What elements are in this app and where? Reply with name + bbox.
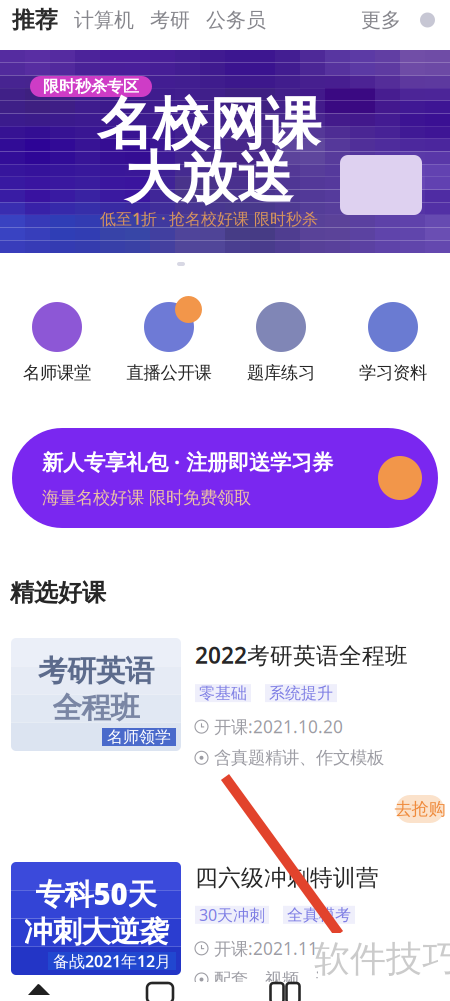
staticText: 公务员 [206, 8, 266, 32]
staticText: 开课:2021.10.20 [214, 715, 343, 738]
button[interactable]: 计算机 [66, 0, 142, 40]
staticText: 计算机 [74, 8, 134, 32]
staticText: 去抢购 [394, 798, 445, 820]
staticText: 全程班 [52, 690, 139, 726]
button[interactable]: 去抢购 [396, 795, 444, 823]
button[interactable]: 首页 [0, 982, 78, 1001]
staticText: 备战2021年12月 [53, 950, 171, 972]
button[interactable]: 考研 [142, 0, 198, 40]
staticText: 全真模考 [287, 905, 351, 925]
button[interactable]: 直播公开课 [113, 296, 225, 388]
staticText: 名校网课 [97, 90, 321, 158]
staticText: 限时秒杀专区 [43, 77, 139, 96]
staticText: 考研 [150, 8, 190, 32]
staticText: 专科50天 [35, 874, 156, 913]
button[interactable]: 新人专享礼包 · 注册即送学习券 [12, 428, 438, 528]
staticText: 直播公开课 [126, 362, 211, 383]
staticText: 开课:2021.11.08 [214, 937, 343, 960]
staticText: 2022考研英语全程班 [195, 640, 408, 670]
staticText: 四六级冲刺特训营 [195, 864, 379, 892]
staticText: 新人专享礼包 · 注册即送学习券 [42, 448, 333, 476]
button[interactable]: 公务员 [198, 0, 274, 40]
staticText: 含真题精讲、作文模板 [214, 747, 384, 768]
button[interactable]: 课程 [121, 982, 199, 1001]
button[interactable]: 学习资料 [337, 296, 449, 388]
staticText: 推荐 [12, 6, 58, 34]
button[interactable]: 题库练习 [225, 296, 337, 388]
staticText: 名师课堂 [23, 362, 91, 383]
staticText: 题库练习 [247, 362, 315, 383]
staticText: 30天冲刺 [199, 904, 265, 925]
staticText: 海量名校好课 限时免费领取 [42, 487, 251, 508]
staticText: 学习资料 [359, 362, 427, 383]
staticText: 更多 [361, 8, 401, 32]
button[interactable]: 推荐 [4, 0, 66, 40]
staticText: 低至1折 · 抢名校好课 限时秒杀 [100, 208, 318, 229]
button[interactable]: 名师课堂 [1, 296, 113, 388]
button[interactable]: 更多 [353, 0, 409, 40]
staticText: 精选好课 [10, 578, 106, 607]
staticText: 考研英语 [38, 653, 154, 689]
staticText: 零基础 [199, 683, 247, 703]
staticText: 大放送 [125, 144, 293, 212]
staticText: 系统提升 [269, 683, 333, 703]
staticText: 冲刺大逆袭 [23, 914, 168, 950]
staticText: 名师领学 [107, 727, 171, 747]
staticText: 配套、视频、讲义、题库 [214, 969, 401, 990]
staticText: 软件技巧 [314, 937, 450, 981]
button[interactable]: 题库 [246, 982, 324, 1001]
button[interactable]: 搜索 [409, 0, 446, 40]
